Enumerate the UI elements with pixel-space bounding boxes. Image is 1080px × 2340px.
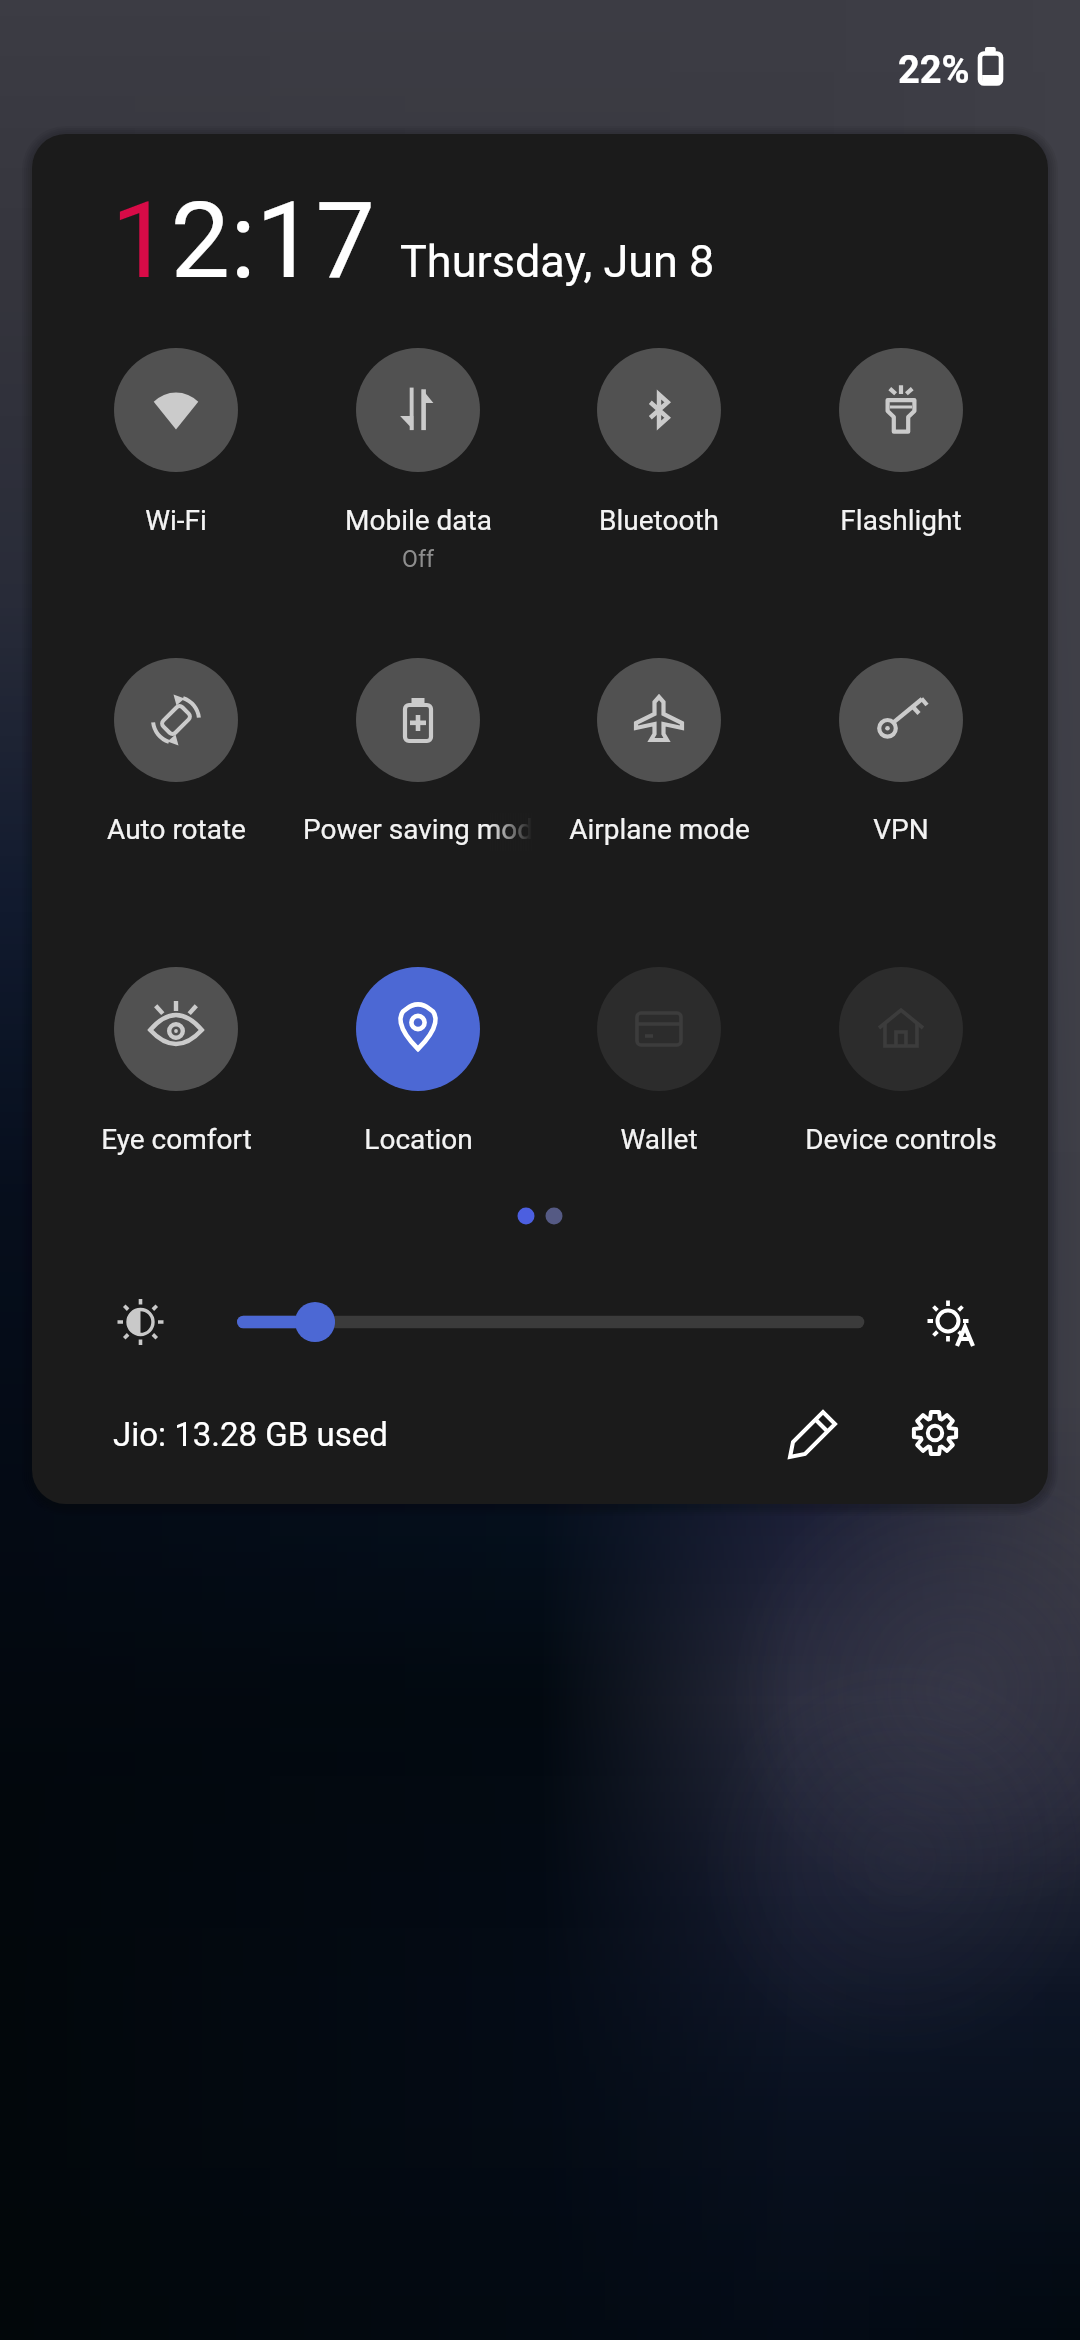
- staticText: Off: [402, 546, 434, 573]
- staticText: Power saving mode: [303, 813, 532, 846]
- button[interactable]: Settings: [907, 1405, 963, 1461]
- staticText: Mobile data: [345, 504, 492, 537]
- staticText: Flashlight: [840, 504, 962, 537]
- staticText: Wi-Fi: [145, 504, 207, 537]
- staticText: Auto rotate: [107, 813, 246, 846]
- button[interactable]: [538, 336, 780, 544]
- button[interactable]: [538, 955, 780, 1163]
- button[interactable]: [100, 1400, 420, 1466]
- button[interactable]: [55, 955, 297, 1163]
- button[interactable]: [297, 955, 539, 1163]
- staticText: Eye comfort: [101, 1123, 252, 1156]
- staticText: 12:17: [111, 179, 375, 303]
- button[interactable]: [780, 646, 1022, 854]
- button[interactable]: [780, 955, 1022, 1163]
- staticText: Device controls: [805, 1123, 997, 1156]
- staticText: Wallet: [620, 1123, 698, 1156]
- button[interactable]: Brightness: [111, 1293, 171, 1353]
- staticText: Thursday, Jun 8: [400, 235, 715, 288]
- staticText: Location: [364, 1123, 473, 1156]
- staticText: Airplane mode: [569, 813, 750, 846]
- staticText: VPN: [873, 813, 929, 846]
- button[interactable]: Auto brightness: [922, 1294, 982, 1354]
- staticText: 22%: [898, 48, 970, 93]
- button[interactable]: [297, 336, 539, 544]
- staticText: Jio: 13.28 GB used: [113, 1415, 388, 1454]
- button[interactable]: [780, 336, 1022, 544]
- button[interactable]: Brightness slider: [217, 1292, 887, 1352]
- button[interactable]: Edit: [786, 1405, 842, 1461]
- staticText: Bluetooth: [599, 504, 719, 537]
- button[interactable]: [55, 646, 297, 854]
- button[interactable]: [55, 336, 297, 544]
- button[interactable]: [538, 646, 780, 854]
- other: Battery 22 percent: [972, 42, 1008, 92]
- button[interactable]: [297, 646, 539, 854]
